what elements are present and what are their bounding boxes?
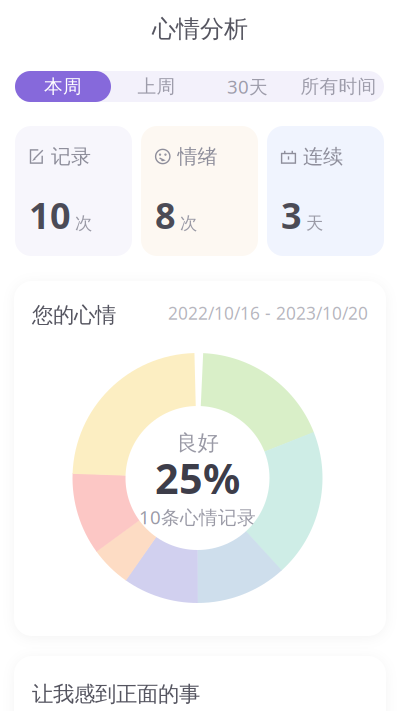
staticText: 让我感到正面的事 <box>32 681 200 707</box>
staticText: 10 <box>29 191 71 239</box>
button[interactable]: 本周 <box>15 71 111 102</box>
staticText: 次 <box>75 213 92 234</box>
staticText: 天 <box>306 213 323 234</box>
staticText: 连续 <box>303 144 343 169</box>
staticText: 上周 <box>137 75 175 98</box>
staticText: 8 <box>155 191 176 239</box>
staticText: 25% <box>155 451 240 505</box>
staticText: 次 <box>180 213 197 234</box>
staticText: 良好 <box>176 430 218 456</box>
staticText: 30天 <box>227 74 268 99</box>
button[interactable]: 上周 <box>111 71 202 102</box>
staticText: 所有时间 <box>300 75 376 98</box>
staticText: 您的心情 <box>32 302 116 328</box>
staticText: 情绪 <box>177 144 217 169</box>
staticText: 记录 <box>51 144 91 169</box>
button[interactable]: 30天 <box>202 71 293 102</box>
staticText: 3 <box>281 191 302 239</box>
staticText: 10条心情记录 <box>139 505 256 529</box>
staticText: 本周 <box>44 75 82 98</box>
staticText: 心情分析 <box>152 14 248 44</box>
staticText: 2022/10/16 - 2023/10/20 <box>168 301 368 324</box>
button[interactable]: 所有时间 <box>293 71 384 102</box>
